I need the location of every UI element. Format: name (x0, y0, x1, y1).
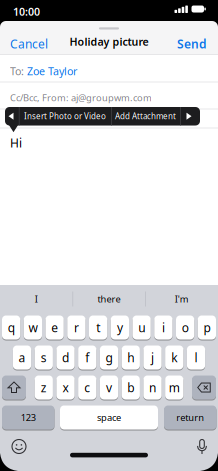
staticText: m (169, 379, 180, 395)
button[interactable]: there (97, 293, 120, 305)
button[interactable]: Cc/Bcc, From: aj@groupwm.com (10, 91, 152, 104)
staticText: h (127, 349, 134, 365)
staticText: i (162, 319, 165, 335)
button[interactable]: v (100, 375, 118, 400)
staticText: Insert Photo or Video (24, 111, 106, 121)
button[interactable] (5, 109, 19, 123)
staticText: w (28, 319, 37, 335)
button[interactable]: o (176, 315, 194, 340)
staticText: x (62, 379, 68, 395)
button[interactable]: b (122, 375, 140, 400)
staticText: 10:00 (13, 4, 40, 19)
button[interactable] (197, 439, 207, 455)
button[interactable]: d (56, 345, 75, 370)
button[interactable]: I'm (175, 293, 189, 305)
staticText: y (117, 319, 123, 335)
staticText: Cc/Bcc, From: aj@groupwm.com (10, 91, 152, 104)
staticText: z (41, 379, 47, 395)
staticText: b (127, 379, 134, 395)
button[interactable]: f (78, 345, 96, 370)
staticText: n (149, 379, 156, 395)
staticText: a (18, 349, 25, 365)
button[interactable]: x (56, 375, 75, 400)
staticText: s (41, 349, 47, 365)
button[interactable]: To: (10, 64, 77, 78)
staticText: l (194, 349, 197, 365)
staticText: there (97, 293, 120, 305)
staticText: Zoe Taylor (27, 64, 77, 78)
staticText: Hi (10, 135, 22, 151)
staticText: return (176, 411, 204, 424)
staticText: e (51, 319, 58, 335)
staticText: v (106, 379, 112, 395)
button[interactable]: a (13, 345, 31, 370)
staticText: g (105, 349, 112, 365)
button[interactable]: c (78, 375, 96, 400)
staticText: k (171, 349, 177, 365)
staticText: Send (177, 36, 207, 52)
button[interactable]: k (165, 345, 183, 370)
button[interactable] (192, 375, 216, 400)
staticText: Add Attachment (115, 111, 176, 121)
staticText: 123 (21, 411, 36, 424)
staticText: p (203, 319, 210, 335)
button[interactable] (2, 375, 26, 400)
button[interactable]: Insert Photo or Video (24, 111, 106, 121)
staticText: c (84, 379, 90, 395)
button[interactable]: l (187, 345, 205, 370)
button[interactable]: Cancel (10, 36, 48, 52)
staticText: j (151, 349, 154, 365)
button[interactable]: t (89, 315, 107, 340)
button[interactable]: w (24, 315, 42, 340)
staticText: f (85, 349, 89, 365)
button[interactable] (181, 109, 195, 123)
staticText: d (62, 349, 69, 365)
staticText: r (74, 319, 79, 335)
button[interactable]: q (2, 315, 20, 340)
staticText: Cancel (10, 36, 48, 52)
button[interactable]: Send (177, 36, 207, 52)
staticText: o (182, 319, 189, 335)
button[interactable]: p (198, 315, 216, 340)
staticText: q (8, 319, 15, 335)
staticText: I (35, 293, 38, 305)
button[interactable]: g (100, 345, 118, 370)
button[interactable]: i (154, 315, 172, 340)
button[interactable]: m (165, 375, 183, 400)
button[interactable]: I (35, 293, 38, 305)
button[interactable]: space (60, 405, 158, 430)
button[interactable]: r (67, 315, 85, 340)
button[interactable]: n (143, 375, 162, 400)
button[interactable]: return (164, 405, 216, 430)
button[interactable]: z (35, 375, 53, 400)
button[interactable]: e (45, 315, 64, 340)
staticText: To: (10, 64, 24, 78)
staticText: space (97, 411, 121, 424)
button[interactable]: s (35, 345, 53, 370)
button[interactable]: 123 (2, 405, 54, 430)
button[interactable]: y (111, 315, 129, 340)
button[interactable]: h (122, 345, 140, 370)
staticText: I'm (175, 293, 189, 305)
button[interactable]: Add Attachment (115, 111, 176, 121)
button[interactable]: u (132, 315, 151, 340)
button[interactable]: j (143, 345, 162, 370)
staticText: u (138, 319, 145, 335)
staticText: Holiday picture (69, 34, 148, 49)
button[interactable] (11, 438, 27, 454)
staticText: t (96, 319, 100, 335)
